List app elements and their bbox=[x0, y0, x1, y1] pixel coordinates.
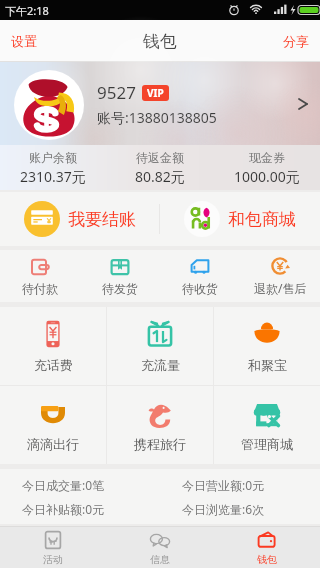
button[interactable]: 9527 bbox=[0, 62, 320, 145]
staticText: 账户余额 bbox=[29, 150, 77, 165]
button[interactable]: 和聚宝 bbox=[214, 307, 320, 385]
button[interactable]: 待收货 bbox=[160, 250, 240, 302]
button[interactable]: 现金券 bbox=[213, 145, 320, 190]
button[interactable]: 滴滴出行 bbox=[0, 386, 106, 464]
staticText: 钱包 bbox=[143, 31, 177, 52]
button[interactable]: 待返金额 bbox=[106, 145, 213, 190]
staticText: 现金券 bbox=[249, 150, 285, 165]
button[interactable]: 钱包 bbox=[213, 527, 320, 568]
staticText: 滴滴出行 bbox=[27, 436, 79, 452]
staticText: VIP bbox=[147, 86, 164, 100]
staticText: 待付款 bbox=[22, 281, 58, 296]
staticText: 和包商城 bbox=[228, 209, 296, 230]
staticText: 待收货 bbox=[182, 281, 218, 296]
staticText: 设置 bbox=[11, 33, 37, 49]
button[interactable]: 充话费 bbox=[0, 307, 106, 385]
button[interactable]: 设置 bbox=[0, 20, 48, 62]
staticText: 退款/售后 bbox=[254, 280, 307, 296]
button[interactable]: 我要结账 bbox=[0, 192, 159, 246]
button[interactable]: 待付款 bbox=[0, 250, 80, 302]
staticText: 信息 bbox=[150, 553, 170, 566]
staticText: 分享 bbox=[283, 33, 309, 49]
staticText: 待返金额 bbox=[136, 150, 184, 165]
button[interactable]: 和包商城 bbox=[160, 192, 320, 246]
staticText: 今日补贴额:0元 bbox=[22, 501, 182, 517]
staticText: 今日浏览量:6次 bbox=[182, 501, 265, 517]
staticText: 和聚宝 bbox=[248, 357, 287, 373]
staticText: 下午2:18 bbox=[5, 3, 49, 18]
other: Account detail bbox=[296, 97, 310, 111]
button[interactable]: 活动 bbox=[0, 527, 106, 568]
button[interactable]: 退款/售后 bbox=[240, 250, 320, 302]
staticText: 80.82元 bbox=[135, 167, 185, 186]
button[interactable]: 分享 bbox=[272, 20, 320, 62]
staticText: 活动 bbox=[43, 553, 63, 566]
button[interactable]: 管理商城 bbox=[214, 386, 320, 464]
staticText: 携程旅行 bbox=[134, 436, 186, 452]
staticText: 9527 bbox=[97, 81, 136, 104]
button[interactable]: 待发货 bbox=[80, 250, 160, 302]
staticText: 待发货 bbox=[102, 281, 138, 296]
button[interactable]: 充流量 bbox=[107, 307, 213, 385]
staticText: 充流量 bbox=[141, 357, 180, 373]
staticText: 管理商城 bbox=[241, 436, 293, 452]
staticText: 充话费 bbox=[34, 357, 73, 373]
staticText: 今日成交量:0笔 bbox=[22, 477, 182, 493]
button[interactable]: 账户余额 bbox=[0, 145, 106, 190]
staticText: 今日营业额:0元 bbox=[182, 477, 265, 493]
staticText: 钱包 bbox=[257, 553, 277, 566]
staticText: 账号:13880138805 bbox=[97, 108, 217, 127]
staticText: 我要结账 bbox=[68, 209, 136, 230]
staticText: 2310.37元 bbox=[20, 167, 86, 186]
staticText: 1000.00元 bbox=[234, 167, 300, 186]
button[interactable]: 携程旅行 bbox=[107, 386, 213, 464]
button[interactable]: 信息 bbox=[106, 527, 213, 568]
